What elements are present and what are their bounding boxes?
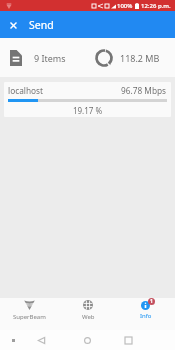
staticText: 9 Items [34,52,66,64]
button[interactable]: localhost [4,82,171,117]
staticText: 118.2 MB [120,52,160,64]
staticText: 1 [150,298,153,305]
staticText: 100% [117,2,133,10]
staticText: 19.17 % [8,105,167,116]
button[interactable]: Recents [120,332,136,348]
button[interactable]: Home [79,332,95,348]
staticText: Send [29,18,54,32]
staticText: 96.78 Mbps [121,85,167,96]
staticText: Web [82,313,95,321]
staticText: SuperBeam [13,313,46,321]
button[interactable]: Back [33,332,49,348]
staticText: localhost [8,85,44,96]
staticText: Info [140,312,152,320]
button[interactable]: 1 [117,298,175,320]
button[interactable]: Close [0,11,27,38]
staticText: 12:26 p.m. [141,2,171,10]
button[interactable]: SuperBeam [0,298,59,321]
button[interactable]: Web [59,298,117,321]
